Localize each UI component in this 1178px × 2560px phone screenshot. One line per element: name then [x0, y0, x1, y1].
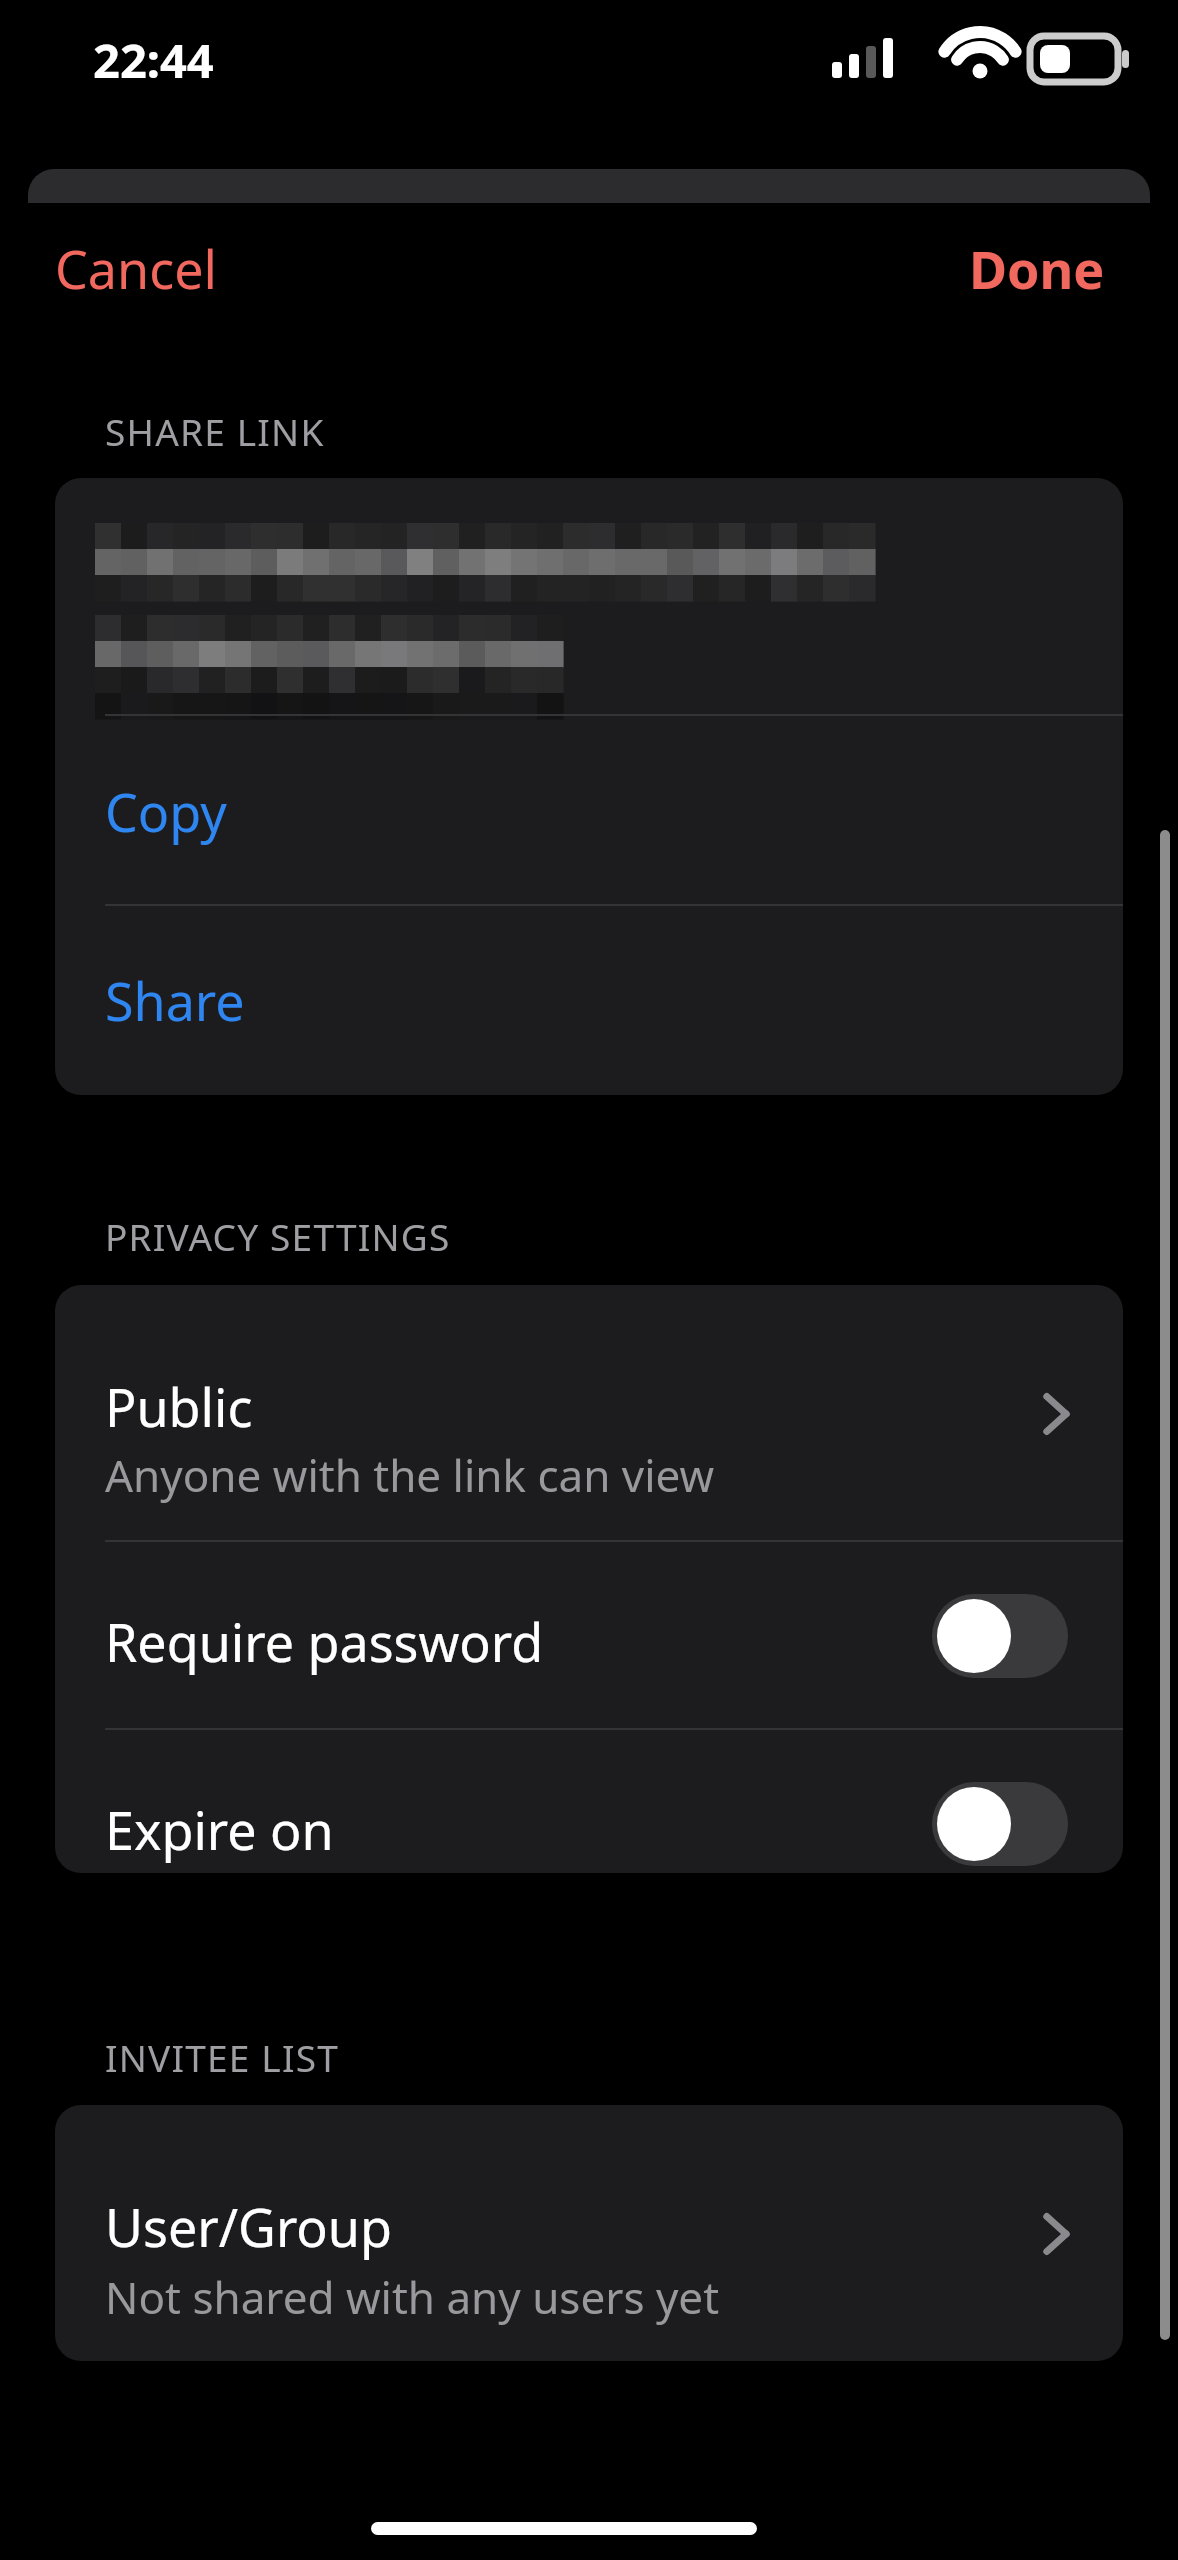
staticText: Anyone with the link can view [105, 1445, 715, 1505]
button[interactable]: Cancel [30, 220, 240, 316]
button[interactable]: Copy [55, 716, 1123, 906]
button[interactable]: Require password [932, 1594, 1068, 1678]
staticText: Copy [105, 776, 227, 847]
staticText: INVITEE LIST [105, 2032, 339, 2082]
button[interactable]: User/Group [55, 2105, 1123, 2361]
staticText: PRIVACY SETTINGS [105, 1211, 451, 1261]
staticText: Share [105, 965, 245, 1036]
button[interactable]: Require password [55, 1542, 1123, 1730]
staticText: 22:44 [93, 28, 214, 92]
staticText: Done [969, 233, 1105, 304]
staticText: User/Group [105, 2191, 392, 2262]
staticText: Public [105, 1371, 253, 1442]
staticText: Expire on [105, 1794, 334, 1865]
button[interactable]: Expire on [932, 1782, 1068, 1866]
staticText: SHARE LINK [105, 406, 325, 456]
button[interactable]: Done [930, 220, 1130, 316]
staticText: Cancel [55, 233, 217, 304]
staticText: Not shared with any users yet [105, 2267, 720, 2327]
staticText: Require password [105, 1606, 544, 1677]
button[interactable]: Public [55, 1285, 1123, 1540]
button[interactable]: Share [55, 906, 1123, 1095]
button[interactable]: Expire on [55, 1730, 1123, 1873]
